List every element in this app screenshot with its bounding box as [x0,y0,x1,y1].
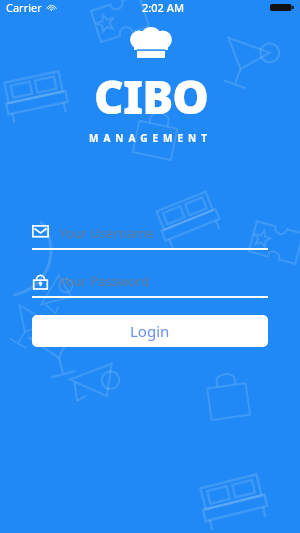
staticText: Your Username [59,224,154,242]
other: Password [32,273,49,290]
staticText: CIBO [94,65,208,128]
staticText: Login [130,321,170,341]
staticText: 2:02 AM [142,0,185,15]
button[interactable]: Password [32,270,268,298]
button[interactable]: Login [32,315,268,347]
button[interactable]: Username [32,222,268,250]
staticText: MANAGEMENT [89,131,212,145]
staticText: Your Password [59,272,150,290]
staticText: Carrier [6,0,42,15]
other: Username [32,225,49,242]
